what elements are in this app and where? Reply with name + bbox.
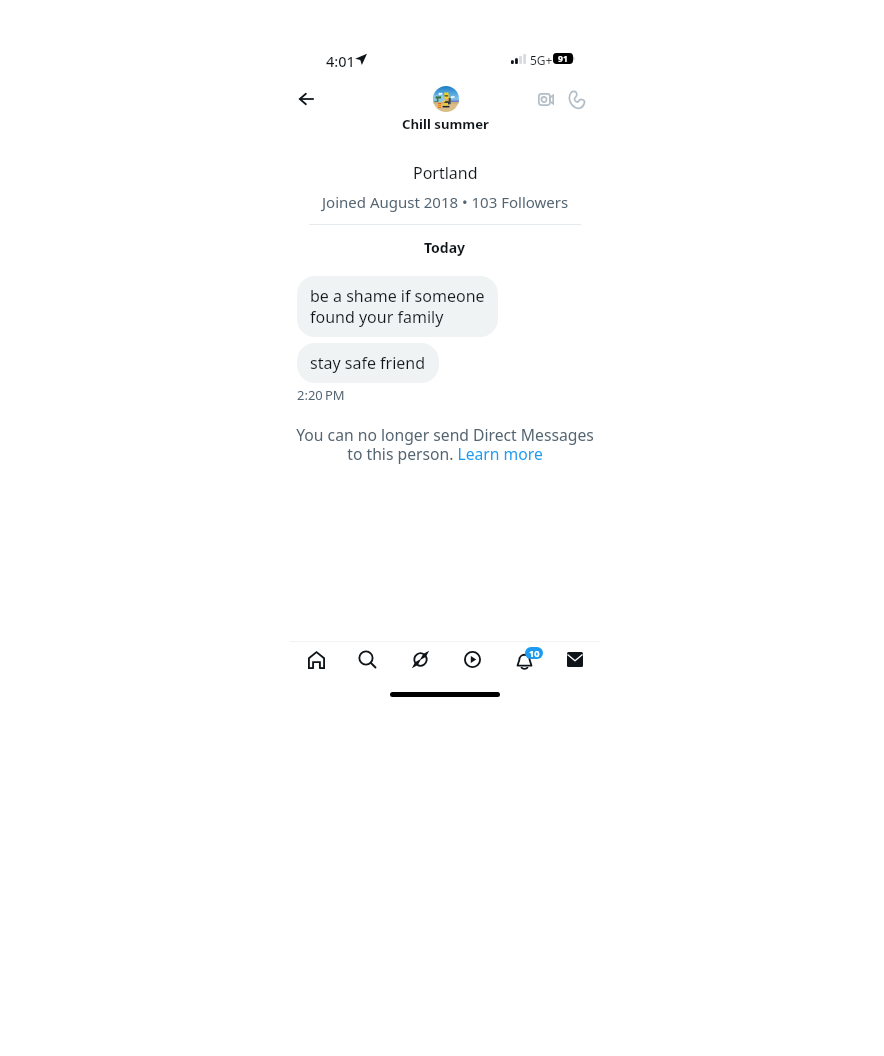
button[interactable]: Video call	[529, 83, 562, 116]
button[interactable]: Video	[451, 638, 493, 680]
staticText: You can no longer send Direct Messages t…	[295, 424, 595, 464]
button[interactable]: stay safe friend	[297, 343, 439, 383]
staticText: 91	[558, 53, 568, 64]
button[interactable]: Grok	[399, 638, 441, 680]
button[interactable]: be a shame if someone found your family	[297, 276, 498, 337]
staticText: 2:20 PM	[297, 386, 345, 404]
button[interactable]: Home	[295, 638, 337, 680]
button[interactable]: Back	[290, 82, 323, 115]
button[interactable]: Messages	[554, 638, 596, 680]
staticText: Today	[424, 238, 466, 257]
button[interactable]: Search	[345, 638, 387, 680]
staticText: Portland	[413, 162, 478, 184]
staticText: Chill summer	[402, 115, 489, 132]
staticText: 4:01	[326, 51, 355, 71]
staticText: 10	[529, 647, 540, 659]
staticText: 5G+	[530, 52, 553, 68]
staticText: be a shame if someone found your family	[310, 285, 485, 328]
button[interactable]: Call	[560, 83, 593, 116]
button[interactable]: Learn more	[456, 445, 544, 464]
button[interactable]: Chill summer	[388, 84, 502, 132]
staticText: stay safe friend	[310, 352, 426, 374]
staticText: Joined August 2018 • 103 Followers	[322, 192, 569, 212]
button[interactable]: Notifications	[503, 638, 545, 680]
